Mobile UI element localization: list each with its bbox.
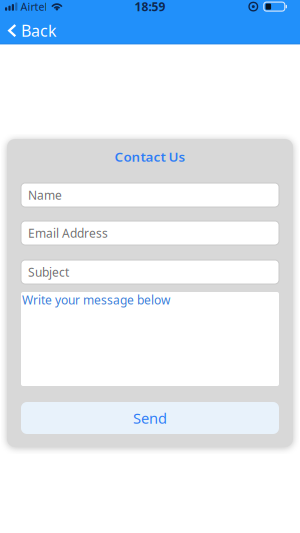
textField[interactable]: Email Address (21, 221, 279, 245)
textField[interactable]: Write your message below (21, 292, 279, 386)
staticText: Contact Us (114, 148, 185, 165)
textField[interactable]: Name (21, 183, 279, 207)
staticText: Email Address (28, 225, 108, 241)
textField[interactable]: Subject (21, 260, 279, 284)
button[interactable]: Back (0, 16, 57, 41)
staticText: Send (133, 408, 167, 428)
staticText: Subject (28, 264, 69, 280)
button[interactable]: Send (21, 402, 279, 434)
staticText: Name (28, 187, 62, 203)
staticText: 18:59 (134, 0, 165, 14)
staticText: Back (21, 20, 57, 41)
staticText: Airtel (20, 0, 47, 14)
staticText: Write your message below (22, 292, 170, 308)
